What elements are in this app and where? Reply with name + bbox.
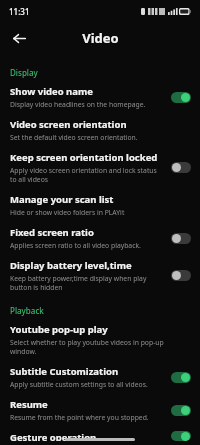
staticText: Keep battery power,time display when pla… [10, 274, 165, 292]
button[interactable]: Youtube pop-up play [0, 318, 200, 360]
button[interactable]: Fixed screen ratio [0, 221, 200, 254]
staticText: Applies screen ratio to all video playba… [10, 241, 141, 250]
staticText: Playback [10, 305, 44, 316]
staticText: Show video name [10, 85, 93, 98]
button[interactable]: Keep screen orientation locked [0, 146, 200, 188]
button[interactable]: Toggle on [171, 431, 191, 441]
staticText: Resume [10, 398, 48, 411]
staticText: Subtitle Customization [10, 365, 119, 378]
button[interactable]: Toggle on [171, 405, 191, 416]
staticText: Gesture operation [10, 431, 97, 441]
staticText: Set the default video screen orientation… [10, 133, 138, 142]
button[interactable]: Manage your scan list [0, 188, 200, 221]
staticText: Keep screen orientation locked [10, 151, 158, 164]
staticText: Video screen orientation [10, 118, 127, 131]
button[interactable]: Show video name [0, 80, 200, 113]
button[interactable]: Toggle on [171, 372, 191, 383]
button[interactable]: Subtitle Customization [0, 360, 200, 393]
staticText: Resume from the point where you stopped. [10, 413, 149, 422]
staticText: Video [82, 29, 119, 47]
staticText: Select whether to play youtube videos in… [10, 338, 165, 356]
button[interactable]: Display battery level,time [0, 254, 200, 296]
staticText: Display battery level,time [10, 259, 132, 272]
staticText: Youtube pop-up play [10, 323, 108, 336]
button[interactable]: Toggle off [171, 162, 191, 173]
button[interactable]: Toggle off [171, 270, 191, 281]
staticText: Manage your scan list [10, 193, 114, 206]
staticText: Display [10, 67, 38, 78]
button[interactable]: Video screen orientation [0, 113, 200, 146]
button[interactable]: Back [6, 25, 32, 51]
staticText: Display video headlines on the homepage. [10, 100, 146, 109]
button[interactable]: Toggle on [171, 92, 191, 103]
staticText: Fixed screen ratio [10, 226, 94, 239]
staticText: Apply subtitle custom settings to all vi… [10, 380, 148, 389]
button[interactable]: Toggle off [171, 233, 191, 244]
staticText: Hide or show video folders in PLAYit [10, 208, 125, 217]
staticText: 11:31 [9, 6, 30, 17]
staticText: Apply video screen orientation and lock … [10, 166, 165, 184]
button[interactable]: Resume [0, 393, 200, 426]
button[interactable]: Gesture operation [0, 426, 200, 445]
